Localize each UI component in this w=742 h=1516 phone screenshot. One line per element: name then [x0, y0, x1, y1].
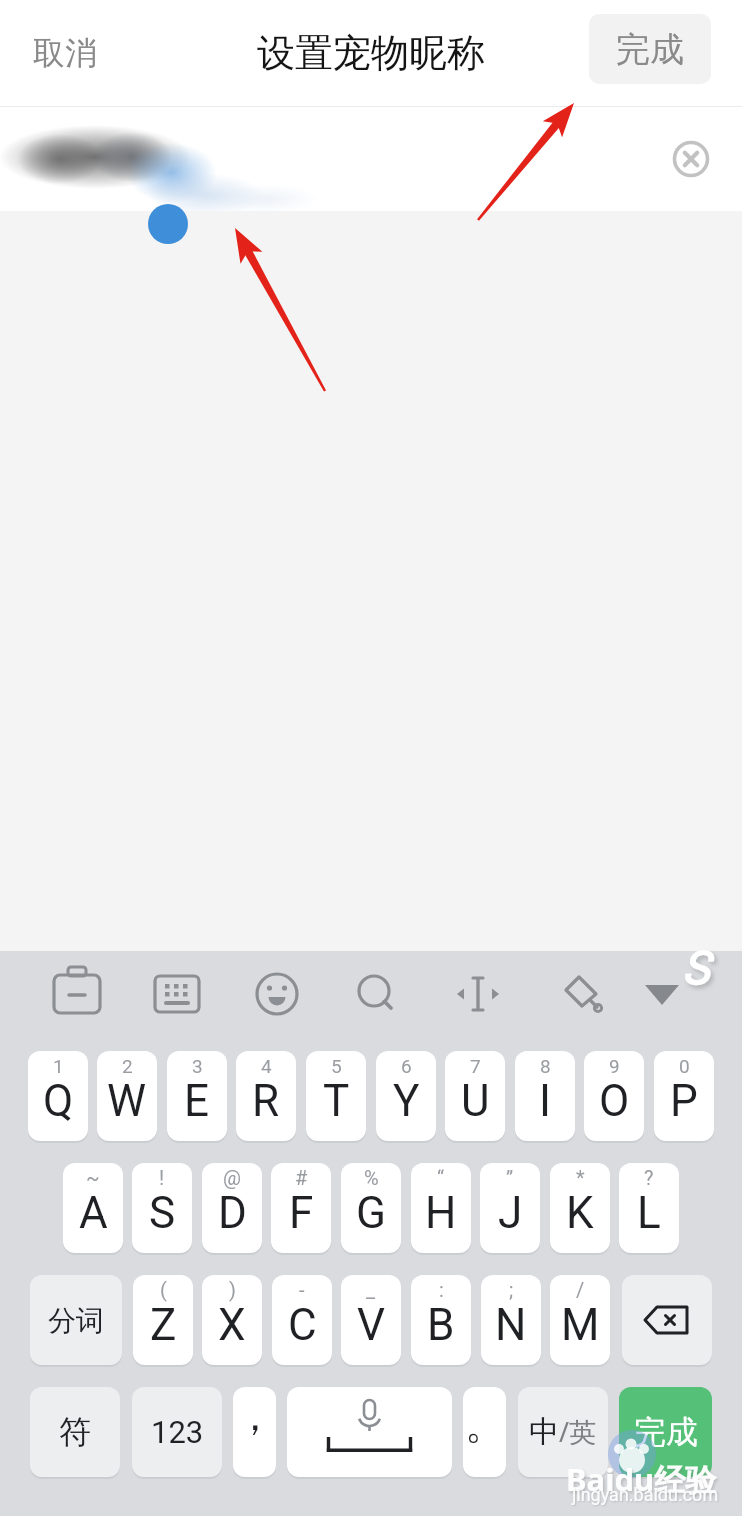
button[interactable]: [671, 139, 711, 179]
staticText: 2: [122, 1055, 133, 1077]
staticText: G: [356, 1187, 386, 1239]
staticText: 6: [401, 1055, 412, 1077]
button[interactable]: 取消: [20, 33, 84, 73]
staticText: %: [364, 1166, 379, 1189]
button[interactable]: !: [132, 1163, 192, 1253]
button[interactable]: 0: [654, 1051, 714, 1141]
button[interactable]: 6: [376, 1051, 436, 1141]
button[interactable]: [287, 1387, 452, 1477]
staticText: 完成: [634, 1412, 698, 1452]
staticText: E: [184, 1075, 210, 1127]
staticText: J: [498, 1187, 523, 1239]
staticText: T: [323, 1075, 350, 1127]
staticText: #: [295, 1166, 308, 1189]
button[interactable]: ?: [619, 1163, 679, 1253]
staticText: 0: [679, 1055, 690, 1077]
button[interactable]: /: [550, 1275, 610, 1365]
button[interactable]: -: [272, 1275, 332, 1365]
staticText: ): [229, 1278, 236, 1301]
button[interactable]: “: [411, 1163, 471, 1253]
staticText: *: [576, 1166, 585, 1189]
staticText: !: [159, 1166, 165, 1189]
button[interactable]: 4: [236, 1051, 296, 1141]
staticText: D: [218, 1187, 247, 1239]
staticText: Z: [150, 1299, 177, 1351]
staticText: 设置宠物昵称: [257, 29, 485, 77]
staticText: 1: [53, 1055, 64, 1077]
staticText: H: [425, 1187, 457, 1239]
staticText: /: [576, 1278, 585, 1301]
staticText: Y: [393, 1075, 420, 1127]
staticText: Baidu经验: [566, 1458, 717, 1500]
staticText: X: [218, 1299, 246, 1351]
staticText: 123: [151, 1414, 204, 1450]
staticText: O: [599, 1075, 630, 1127]
staticText: N: [495, 1299, 527, 1351]
staticText: S: [682, 941, 710, 995]
staticText: B: [427, 1299, 455, 1351]
staticText: 完成: [616, 28, 684, 71]
button[interactable]: 符: [30, 1387, 120, 1477]
button[interactable]: %: [341, 1163, 401, 1253]
staticText: Q: [43, 1075, 74, 1127]
staticText: ”: [506, 1166, 514, 1189]
button[interactable]: #: [271, 1163, 331, 1253]
button[interactable]: 3: [167, 1051, 227, 1141]
staticText: 取消: [33, 33, 97, 73]
staticText: (: [160, 1278, 167, 1301]
button[interactable]: *: [550, 1163, 610, 1253]
staticText: :: [439, 1278, 444, 1301]
staticText: 分词: [48, 1303, 104, 1338]
staticText: U: [461, 1075, 490, 1127]
button[interactable]: 9: [584, 1051, 644, 1141]
staticText: A: [79, 1187, 108, 1239]
button[interactable]: 完成: [589, 14, 711, 84]
staticText: K: [566, 1187, 594, 1239]
button[interactable]: ，: [233, 1387, 276, 1477]
staticText: ~: [86, 1166, 100, 1189]
button[interactable]: 7: [445, 1051, 505, 1141]
button[interactable]: ): [202, 1275, 262, 1365]
staticText: L: [637, 1187, 661, 1239]
staticText: P: [670, 1075, 698, 1127]
button[interactable]: 5: [306, 1051, 366, 1141]
staticText: R: [252, 1075, 280, 1127]
staticText: M: [561, 1299, 600, 1351]
button[interactable]: :: [411, 1275, 471, 1365]
button[interactable]: [622, 1275, 712, 1365]
staticText: 符: [59, 1412, 91, 1452]
button[interactable]: @: [202, 1163, 262, 1253]
button[interactable]: 123: [132, 1387, 222, 1477]
staticText: 8: [540, 1055, 551, 1077]
staticText: V: [357, 1299, 386, 1351]
staticText: 7: [470, 1055, 481, 1077]
staticText: I: [539, 1075, 551, 1127]
button[interactable]: 。: [463, 1387, 506, 1477]
button[interactable]: 分词: [30, 1275, 122, 1365]
button[interactable]: [0, 107, 742, 211]
staticText: C: [288, 1299, 317, 1351]
button[interactable]: ~: [63, 1163, 123, 1253]
button[interactable]: ”: [480, 1163, 540, 1253]
staticText: S: [149, 1187, 176, 1239]
staticText: jingyan.baidu.com: [572, 1484, 719, 1505]
button[interactable]: (: [133, 1275, 193, 1365]
staticText: ;: [509, 1278, 514, 1301]
button[interactable]: 8: [515, 1051, 575, 1141]
staticText: ，: [235, 1391, 275, 1441]
staticText: 5: [331, 1055, 342, 1077]
staticText: _: [366, 1278, 376, 1301]
staticText: @: [223, 1166, 241, 1189]
button[interactable]: ;: [481, 1275, 541, 1365]
staticText: 4: [261, 1055, 272, 1077]
button[interactable]: 完成: [619, 1387, 712, 1477]
staticText: F: [289, 1187, 314, 1239]
button[interactable]: 2: [97, 1051, 157, 1141]
staticText: 9: [609, 1055, 620, 1077]
staticText: “: [437, 1166, 445, 1189]
staticText: 中/英: [529, 1413, 597, 1451]
button[interactable]: 中/英: [518, 1387, 608, 1477]
button[interactable]: _: [341, 1275, 401, 1365]
staticText: -: [299, 1278, 305, 1301]
button[interactable]: 1: [28, 1051, 88, 1141]
